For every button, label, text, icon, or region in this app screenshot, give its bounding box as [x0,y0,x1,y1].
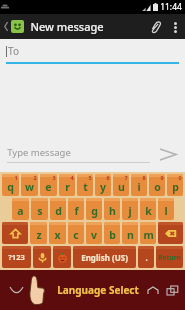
staticText: 11:44 [160,1,182,13]
button[interactable]: c [68,222,84,244]
staticText: 7 [124,174,128,181]
button[interactable]: Type message [7,146,150,163]
staticText: t [83,180,88,194]
button[interactable]: To [0,39,185,64]
button[interactable]: 1 [2,174,19,196]
button[interactable]: 8 [131,174,147,196]
button[interactable]: f [68,198,84,220]
button[interactable]: Home [145,282,161,298]
staticText: . [145,252,148,263]
button[interactable]: 2 [21,174,38,196]
staticText: e [45,180,52,194]
button[interactable]: Emoji [53,246,71,268]
button[interactable]: v [86,222,102,244]
staticText: u [118,180,125,194]
staticText: Type message [7,146,71,159]
staticText: English (US) [81,252,128,263]
button[interactable]: j [122,198,138,220]
staticText: m [143,228,154,242]
button[interactable]: Return [156,246,183,268]
staticText: l [164,204,168,218]
button[interactable]: English (US) [73,246,136,268]
button[interactable]: z [30,222,47,244]
staticText: x [54,228,61,242]
button[interactable]: Voice input [33,246,51,268]
staticText: g [91,204,98,218]
button[interactable]: ?123 [2,246,31,268]
button[interactable]: s [31,198,48,220]
staticText: c [73,228,79,242]
button[interactable]: Send [156,142,180,166]
button[interactable]: Shift [2,222,28,244]
staticText: To [8,44,19,58]
staticText: 4 [70,174,74,181]
staticText: ?123 [8,252,25,262]
staticText: q [7,180,14,194]
button[interactable]: x [49,222,66,244]
staticText: w [25,180,34,194]
staticText: 9 [160,174,164,181]
button[interactable]: More options [167,19,183,35]
button[interactable]: m [140,222,156,244]
staticText: a [17,204,24,218]
staticText: Return [158,253,181,262]
button[interactable]: g [86,198,102,220]
button[interactable]: 3 [40,174,57,196]
staticText: p [172,180,179,194]
button[interactable]: . [138,246,154,268]
staticText: f [74,204,79,218]
staticText: Language Select [57,283,139,297]
staticText: o [154,180,161,194]
staticText: n [127,228,134,242]
staticText: j [128,204,132,218]
staticText: i [137,180,141,194]
staticText: z [36,228,42,242]
staticText: 5 [88,174,92,181]
staticText: s [37,204,43,218]
button[interactable]: 5 [77,174,93,196]
staticText: 3 [52,174,56,181]
button[interactable]: k [140,198,156,220]
staticText: d [55,204,62,218]
button[interactable]: 9 [149,174,165,196]
button[interactable]: 4 [59,174,75,196]
button[interactable]: 7 [113,174,129,196]
staticText: b [109,228,116,242]
staticText: 6 [106,174,110,181]
button[interactable]: l [158,198,174,220]
button[interactable]: h [104,198,120,220]
button[interactable]: Recent apps [164,282,180,298]
button[interactable]: Back [5,279,27,301]
staticText: New message [30,19,104,34]
button[interactable]: Navigate up [2,20,26,33]
staticText: r [65,180,70,194]
staticText: k [145,204,152,218]
button[interactable]: n [122,222,138,244]
staticText: 8 [142,174,146,181]
staticText: 1 [14,174,18,181]
staticText: v [91,228,97,242]
button[interactable]: b [104,222,120,244]
staticText: h [109,204,116,218]
button[interactable]: 0 [167,174,183,196]
staticText: 0 [178,174,182,181]
button[interactable]: 6 [95,174,111,196]
button[interactable]: Backspace [158,222,183,244]
button[interactable]: d [50,198,66,220]
button[interactable]: a [12,198,29,220]
staticText: y [100,180,106,194]
staticText: 2 [33,174,37,181]
button[interactable]: Attach [143,15,167,39]
